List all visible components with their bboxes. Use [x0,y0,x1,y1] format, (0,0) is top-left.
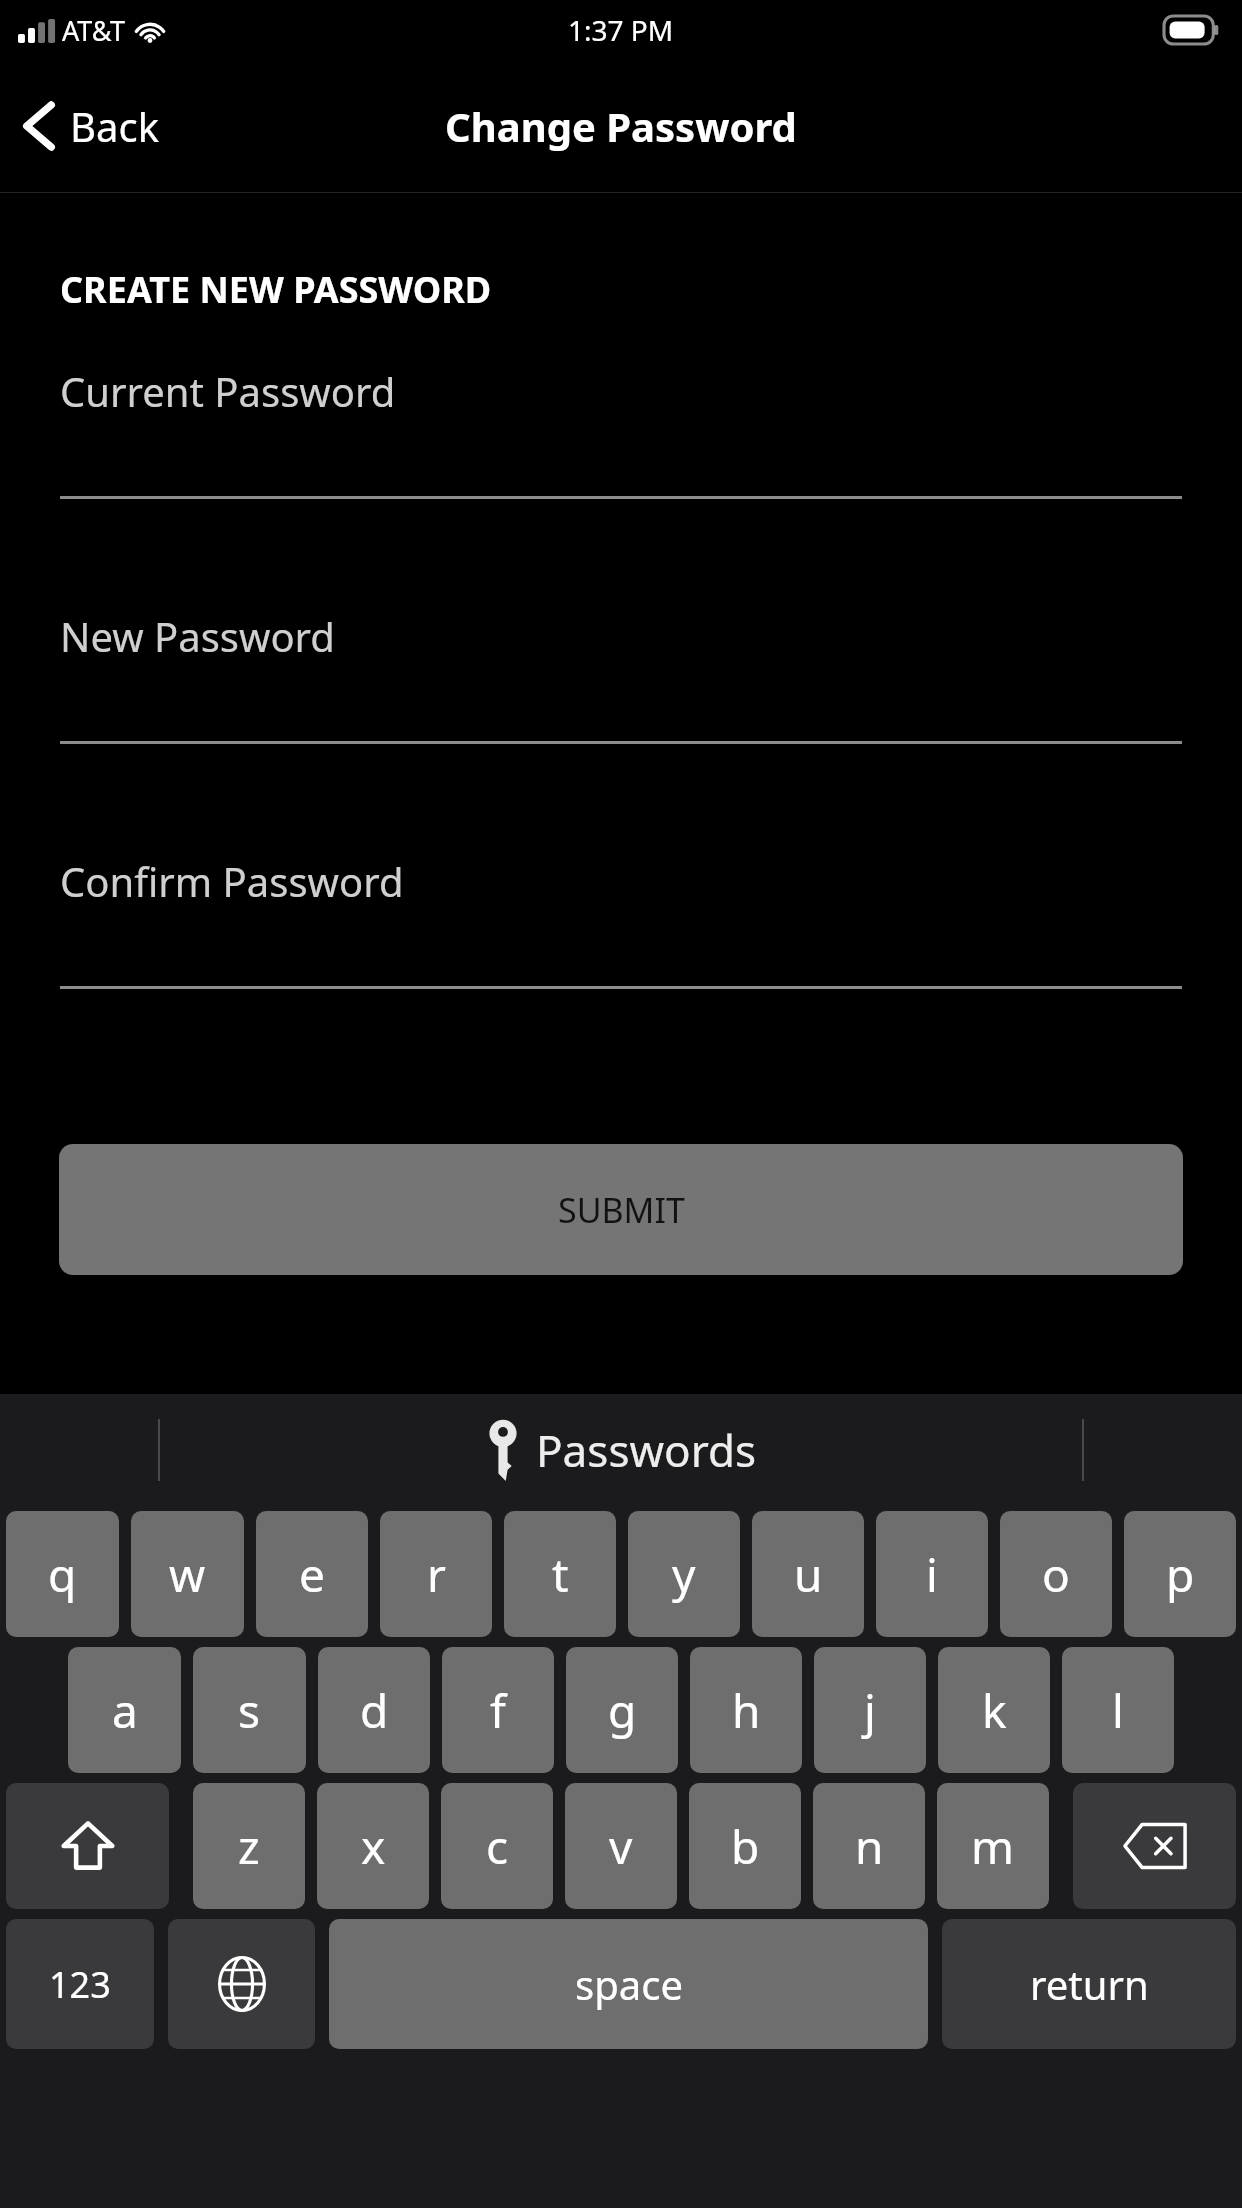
staticText: Back [70,99,159,153]
button[interactable]: Change keyboard language [168,1919,315,2049]
button[interactable]: Shift [6,1783,169,1909]
button[interactable]: i [876,1511,988,1637]
staticText: f [490,1679,506,1742]
staticText: c [486,1815,509,1878]
button[interactable]: Confirm Password [0,854,1242,1099]
staticText: z [238,1815,260,1878]
staticText: b [731,1815,760,1878]
staticText: y [672,1543,696,1606]
staticText: 1:37 PM [568,11,674,49]
staticText: w [169,1543,206,1606]
staticText: e [299,1543,325,1606]
staticText: 123 [49,1960,111,2009]
staticText: j [864,1679,876,1742]
staticText: a [112,1679,138,1742]
button[interactable]: t [504,1511,616,1637]
button[interactable]: q [6,1511,119,1637]
button[interactable]: y [628,1511,740,1637]
staticText: AT&T [62,12,125,49]
button[interactable]: r [380,1511,492,1637]
staticText: Confirm Password [60,854,404,908]
button[interactable]: j [814,1647,926,1773]
staticText: Change Password [445,99,797,153]
staticText: k [982,1679,1007,1742]
staticText: CREATE NEW PASSWORD [60,265,492,314]
button[interactable]: f [442,1647,554,1773]
button[interactable]: Current Password [0,364,1242,609]
staticText: Passwords [536,1420,757,1480]
staticText: n [855,1815,884,1878]
button[interactable]: v [565,1783,677,1909]
button[interactable]: u [752,1511,864,1637]
staticText: h [732,1679,761,1742]
staticText: SUBMIT [558,1187,685,1233]
button[interactable]: e [256,1511,368,1637]
staticText: q [48,1543,77,1606]
staticText: v [609,1815,633,1878]
staticText: r [427,1543,446,1606]
staticText: d [360,1679,389,1742]
button[interactable]: space [329,1919,928,2049]
staticText: return [1030,1957,1149,2011]
button[interactable]: w [131,1511,244,1637]
staticText: l [1112,1679,1124,1742]
staticText: u [794,1543,823,1606]
button[interactable]: m [937,1783,1049,1909]
staticText: t [552,1543,569,1606]
staticText: space [575,1957,683,2011]
button[interactable]: b [689,1783,801,1909]
button[interactable]: c [441,1783,553,1909]
staticText: i [926,1543,938,1606]
button[interactable]: k [938,1647,1050,1773]
button[interactable]: 123 [6,1919,154,2049]
staticText: o [1042,1543,1070,1606]
staticText: Current Password [60,364,396,418]
staticText: New Password [60,609,335,663]
button[interactable]: return [942,1919,1236,2049]
button[interactable]: SUBMIT [59,1144,1183,1275]
button[interactable]: Back [0,89,179,163]
button[interactable]: g [566,1647,678,1773]
button[interactable]: Passwords [486,1419,757,1481]
button[interactable]: n [813,1783,925,1909]
staticText: x [361,1815,386,1878]
button[interactable]: o [1000,1511,1112,1637]
button[interactable]: d [318,1647,430,1773]
button[interactable]: z [193,1783,305,1909]
button[interactable]: Backspace [1073,1783,1236,1909]
button[interactable]: a [68,1647,181,1773]
staticText: m [971,1815,1015,1878]
button[interactable]: s [193,1647,306,1773]
staticText: g [608,1679,637,1742]
button[interactable]: New Password [0,609,1242,854]
button[interactable]: l [1062,1647,1174,1773]
staticText: s [238,1679,261,1742]
button[interactable]: h [690,1647,802,1773]
button[interactable]: p [1124,1511,1236,1637]
staticText: p [1166,1543,1195,1606]
button[interactable]: x [317,1783,429,1909]
